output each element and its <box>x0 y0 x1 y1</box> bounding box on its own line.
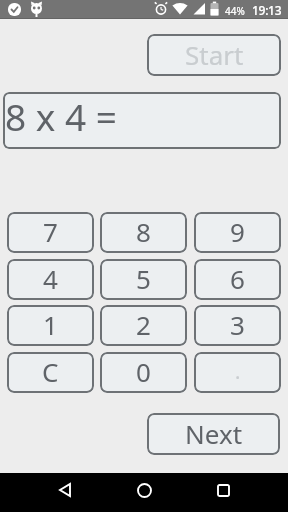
button[interactable]: 3 <box>194 305 281 346</box>
button[interactable]: . <box>194 352 281 393</box>
staticText: 44% <box>225 4 245 18</box>
staticText: 2 <box>136 307 151 342</box>
staticText: 3 <box>230 307 245 342</box>
button[interactable]: 7 <box>7 212 94 253</box>
staticText: 8 <box>136 214 151 249</box>
staticText: 4 <box>43 261 58 296</box>
button[interactable]: 9 <box>194 212 281 253</box>
button[interactable]: C <box>7 352 94 393</box>
button[interactable]: 6 <box>194 259 281 300</box>
staticText: 9 <box>230 214 245 249</box>
staticText: 6 <box>230 261 245 296</box>
staticText: 8 x 4 = <box>5 92 117 141</box>
staticText: 5 <box>136 261 151 296</box>
button[interactable]: 2 <box>100 305 187 346</box>
button[interactable]: 8 <box>100 212 187 253</box>
staticText: 19:13 <box>252 2 282 18</box>
staticText: Start <box>185 37 244 72</box>
button[interactable]: Next <box>147 413 280 455</box>
button[interactable]: 4 <box>7 259 94 300</box>
staticText: 0 <box>136 354 151 389</box>
button[interactable]: Start <box>147 34 281 76</box>
button[interactable] <box>128 474 160 506</box>
staticText: C <box>42 354 59 389</box>
button[interactable]: 8 x 4 = <box>3 92 281 149</box>
staticText: 1 <box>43 307 58 342</box>
button[interactable]: 1 <box>7 305 94 346</box>
staticText: 7 <box>43 214 58 249</box>
button[interactable]: 0 <box>100 352 187 393</box>
staticText: . <box>235 358 241 385</box>
button[interactable] <box>49 474 81 506</box>
button[interactable]: 5 <box>100 259 187 300</box>
staticText: Next <box>185 416 243 451</box>
button[interactable] <box>207 474 239 506</box>
